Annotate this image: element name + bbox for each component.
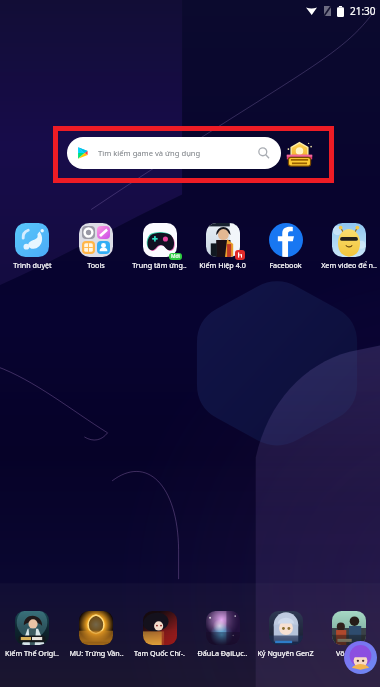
staticText: Trình duyệt <box>13 260 52 270</box>
staticText: MU: Trứng Vần.. <box>69 648 124 658</box>
button[interactable]: MU: Trứng Vần.. <box>64 611 128 658</box>
button[interactable]: Kỷ Nguyên GenZ <box>254 611 317 658</box>
staticText: Xem video để n.. <box>321 260 377 270</box>
staticText: Kỷ Nguyên GenZ <box>257 648 314 658</box>
button[interactable]: Kiếm Thế Origi.. <box>0 611 64 658</box>
button[interactable]: Xem video để n.. <box>317 223 380 270</box>
staticText: 21:30 <box>350 4 376 18</box>
staticText: Tam Quốc Chí-. <box>134 648 185 658</box>
staticText: Facebook <box>269 260 302 270</box>
button[interactable]: Võ Lâm <box>317 611 380 658</box>
button[interactable]: Kiếm Hiệp 4.0 <box>191 223 254 270</box>
staticText: Kiếm Hiệp 4.0 <box>199 260 246 270</box>
button[interactable]: Tools <box>64 223 128 270</box>
staticText: Trung tâm ứng.. <box>132 260 187 270</box>
button[interactable]: Facebook <box>254 223 317 270</box>
staticText: Kiếm Thế Origi.. <box>5 648 59 658</box>
button[interactable]: Tam Quốc Chí-. <box>128 611 191 658</box>
staticText: Tools <box>87 260 105 270</box>
staticText: Mới <box>171 253 180 260</box>
button[interactable]: Mới <box>128 223 191 270</box>
button[interactable]: Trình duyệt <box>0 223 64 270</box>
staticText: Tìm kiếm game và ứng dụng <box>98 148 201 158</box>
button[interactable]: Assistant avatar <box>344 641 377 674</box>
button[interactable]: Tìm kiếm game và ứng dụng <box>67 137 281 169</box>
staticText: ĐấuLa ĐạiLục.. <box>197 648 248 658</box>
button[interactable]: Game event <box>286 141 313 168</box>
staticText: Võ Lâm <box>336 648 361 658</box>
button[interactable]: ĐấuLa ĐạiLục.. <box>191 611 254 658</box>
